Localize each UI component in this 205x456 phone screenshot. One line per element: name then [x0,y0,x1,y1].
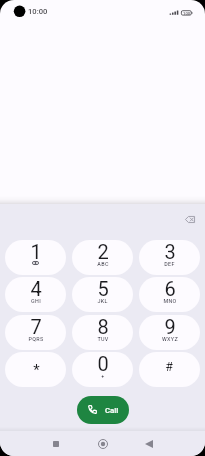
staticText: * [33,361,40,379]
staticText: 0 [97,352,109,375]
button[interactable]: 6 [139,277,200,312]
staticText: Call [105,406,119,415]
button[interactable]: 8 [72,315,133,350]
staticText: MNO [163,298,177,304]
staticText: 100 [183,11,191,16]
button[interactable]: Recent apps [43,431,69,456]
staticText: # [165,359,173,374]
button[interactable]: 9 [139,315,200,350]
staticText: DEF [164,261,175,267]
staticText: ABC [97,261,109,267]
staticText: 10:00 [28,7,48,16]
button[interactable]: # [139,352,200,387]
staticText: 9 [164,315,176,338]
button[interactable]: 7 [5,315,66,350]
staticText: JKL [97,298,108,304]
staticText: 2 [97,240,109,263]
staticText: 8 [97,315,109,338]
button[interactable]: Back [136,431,162,456]
staticText: 3 [164,240,176,263]
staticText: TUV [97,336,109,342]
staticText: 7 [30,315,42,338]
staticText: 4 [30,277,42,300]
button[interactable]: 1 [5,240,66,275]
staticText: PQRS [28,336,44,342]
button[interactable]: Call [77,396,129,424]
staticText: + [101,373,105,379]
staticText: WXYZ [162,336,178,342]
button[interactable]: * [5,352,66,387]
button[interactable]: Backspace [179,208,201,230]
button[interactable]: 0 [72,352,133,387]
button[interactable]: 3 [139,240,200,275]
button[interactable]: 4 [5,277,66,312]
staticText: 1 [30,240,42,263]
staticText: 5 [97,277,109,300]
button[interactable]: 2 [72,240,133,275]
button[interactable]: 5 [72,277,133,312]
button[interactable]: Home [90,431,116,456]
staticText: 6 [164,277,176,300]
staticText: GHI [31,298,41,304]
